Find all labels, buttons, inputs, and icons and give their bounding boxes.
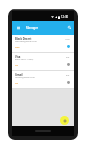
staticText: 9/8 bbox=[66, 56, 70, 59]
staticText: mailadm@gmail.com bbox=[15, 40, 37, 43]
staticText: Visa bbox=[15, 55, 21, 59]
staticText: Manager bbox=[26, 26, 39, 30]
staticText: 12:30 bbox=[61, 15, 69, 19]
button[interactable]: Black Desert bbox=[12, 35, 74, 53]
staticText: Gmail bbox=[15, 73, 23, 77]
staticText: 8/8 bbox=[66, 74, 70, 77]
staticText: Black Desert bbox=[15, 37, 32, 41]
button[interactable]: Search bbox=[67, 25, 72, 30]
staticText: Ok bbox=[15, 64, 18, 67]
staticText: 10/8 bbox=[65, 38, 70, 41]
staticText: Paid bbox=[15, 46, 20, 49]
button[interactable]: Visa bbox=[12, 53, 74, 71]
staticText: taniael@gmail.com bbox=[15, 76, 35, 79]
staticText: Black card - 1987$ bbox=[15, 58, 34, 61]
button[interactable]: Compose bbox=[60, 116, 69, 125]
button[interactable]: Menu bbox=[15, 25, 21, 30]
staticText: Ok bbox=[15, 82, 18, 85]
button[interactable]: Gmail bbox=[12, 71, 74, 89]
